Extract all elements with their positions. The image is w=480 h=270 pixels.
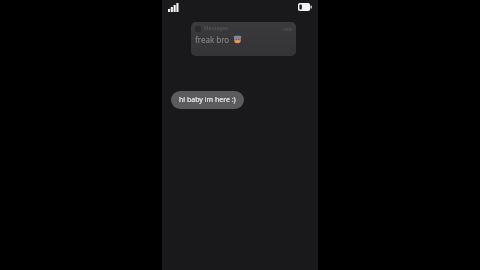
other: Cellular signal bbox=[168, 3, 179, 12]
staticText: Messages bbox=[204, 25, 228, 32]
button[interactable]: Messages bbox=[191, 22, 296, 56]
other: Battery bbox=[298, 3, 312, 11]
staticText: now bbox=[283, 26, 292, 32]
staticText: hi baby im here :) bbox=[179, 95, 236, 105]
staticText: freak bro bbox=[195, 34, 230, 45]
button[interactable]: hi baby im here :) bbox=[171, 91, 244, 109]
